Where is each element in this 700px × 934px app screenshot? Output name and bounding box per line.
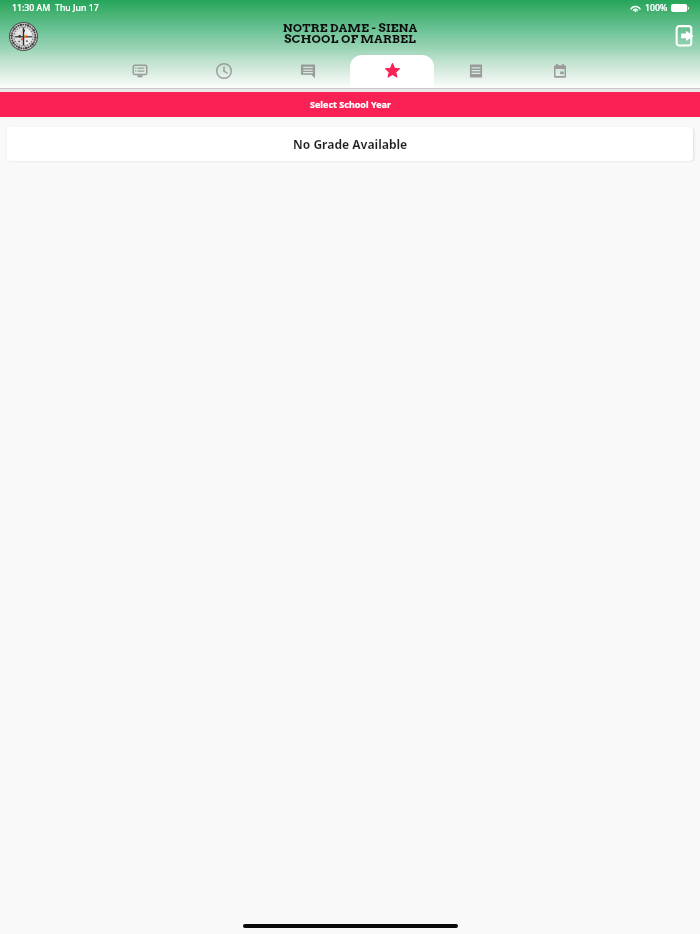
button[interactable]: Messages — [266, 55, 350, 88]
staticText: Thu Jun 17 — [55, 2, 99, 14]
button[interactable]: Dashboard — [98, 55, 182, 88]
button[interactable]: Select School Year — [0, 92, 700, 117]
button[interactable]: Logout — [672, 24, 696, 48]
staticText: No Grade Available — [293, 136, 408, 152]
staticText: 100% — [645, 2, 668, 14]
staticText: 11:30 AM — [12, 2, 51, 14]
button[interactable]: Grades — [350, 55, 434, 88]
button[interactable]: No Grade Available — [7, 127, 693, 161]
staticText: NOTRE DAME - SIENA SCHOOL OF MARBEL — [250, 20, 450, 46]
button[interactable]: Calendar — [518, 55, 602, 88]
staticText: Select School Year — [310, 98, 391, 110]
button[interactable]: Ledger — [434, 55, 518, 88]
button[interactable]: Schedule — [182, 55, 266, 88]
